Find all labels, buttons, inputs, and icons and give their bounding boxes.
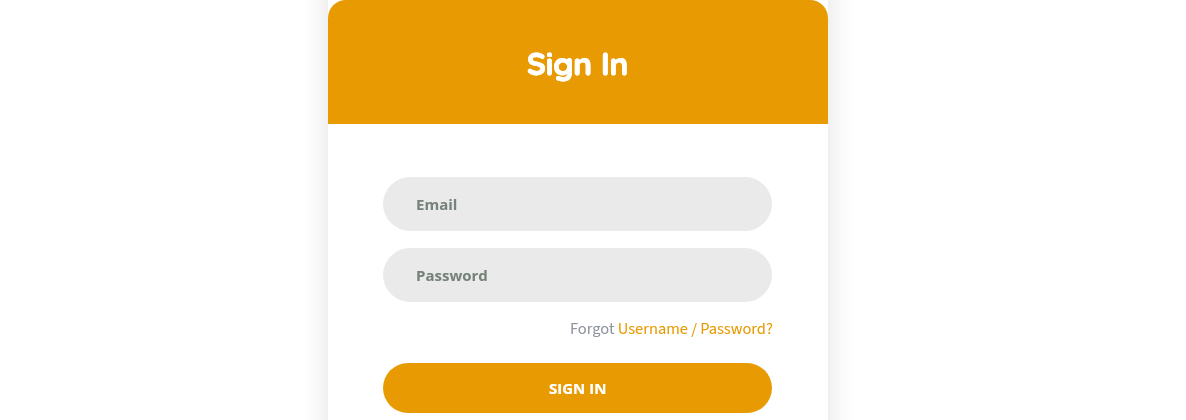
button[interactable]: Password <box>383 248 772 302</box>
staticText: Sign In <box>527 43 629 82</box>
staticText: SIGN IN <box>549 378 607 398</box>
button[interactable]: Forgot Username / Password? <box>570 317 773 340</box>
button[interactable]: SIGN IN <box>383 363 772 413</box>
staticText: Password <box>416 265 488 285</box>
staticText: Sign In <box>527 43 629 82</box>
button[interactable]: Email <box>383 177 772 231</box>
staticText: Email <box>416 194 458 214</box>
